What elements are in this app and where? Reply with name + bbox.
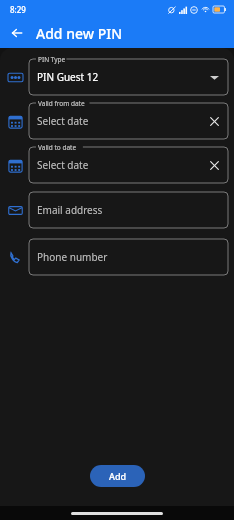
button[interactable]: Email [5,200,25,220]
staticText: Add new PIN [36,24,123,43]
staticText: PIN Guest 12 [37,70,99,84]
staticText: PIN Type [38,55,66,64]
button[interactable]: Email address [29,192,228,228]
button[interactable]: PIN Guest 12 [29,59,228,95]
button[interactable]: Add [90,465,145,487]
staticText: Email address [37,203,103,217]
button[interactable]: Select date [29,103,228,139]
staticText: Valid from date [38,99,85,108]
button[interactable]: Valid to date [5,155,25,175]
button[interactable]: Select date [29,147,228,183]
button[interactable]: Valid from date [5,111,25,131]
staticText: Valid to date [38,143,77,152]
button[interactable]: Phone [5,247,25,267]
button[interactable]: PIN type [5,67,25,87]
button[interactable]: Back [5,21,29,45]
staticText: Select date [37,158,89,172]
button[interactable]: Phone number [29,239,228,275]
staticText: Select date [37,114,89,128]
staticText: Phone number [37,250,108,264]
staticText: 8:29 [10,4,26,15]
staticText: Add [109,470,127,482]
